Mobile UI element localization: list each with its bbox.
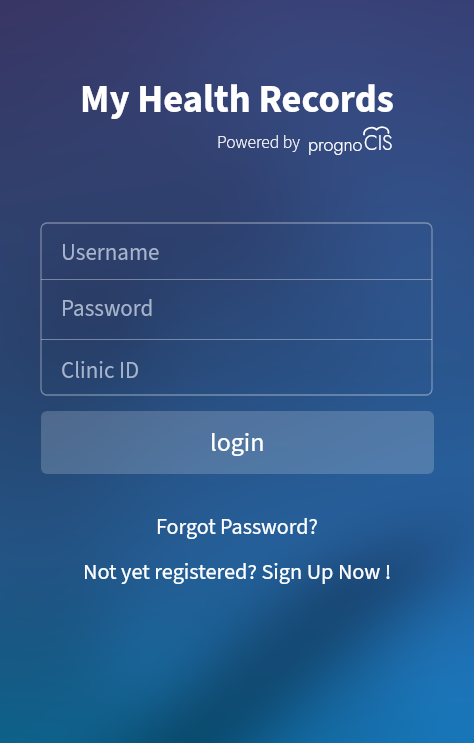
staticText: Password	[61, 292, 154, 325]
staticText: login	[210, 424, 265, 461]
button[interactable]: Forgot Password?	[0, 510, 474, 542]
button[interactable]: Not yet registered? Sign Up Now !	[0, 556, 474, 588]
staticText: Not yet registered? Sign Up Now !	[83, 556, 392, 588]
staticText: progno	[308, 132, 363, 158]
button[interactable]: Clinic ID	[41, 340, 432, 395]
staticText: My Health Records	[0, 73, 474, 128]
staticText: Forgot Password?	[156, 511, 318, 542]
staticText: Username	[61, 236, 160, 269]
staticText: Powered by	[217, 130, 300, 155]
staticText: CIS	[364, 129, 393, 157]
staticText: Clinic ID	[61, 354, 140, 387]
button[interactable]: Password	[41, 280, 432, 339]
button[interactable]: Username	[41, 223, 432, 279]
button[interactable]: login	[41, 411, 434, 474]
